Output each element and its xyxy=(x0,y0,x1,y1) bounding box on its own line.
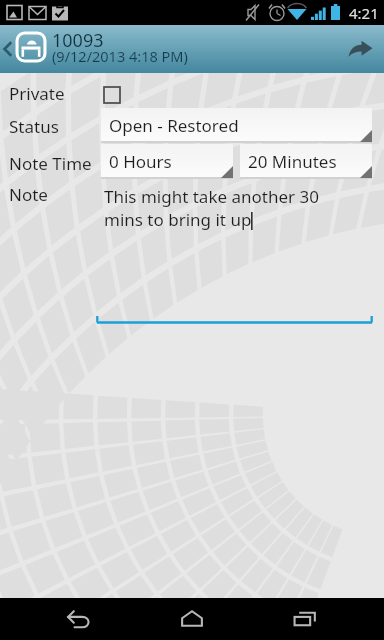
button[interactable]: Back xyxy=(44,598,114,640)
staticText: Status xyxy=(9,115,59,138)
button[interactable]: Share xyxy=(336,25,384,73)
staticText: Open - Restored xyxy=(109,114,239,137)
staticText: Private xyxy=(9,82,65,105)
staticText: This might take another 30 mins to bring… xyxy=(104,185,319,231)
button[interactable]: Open - Restored xyxy=(101,108,372,143)
button[interactable]: Private xyxy=(99,82,125,108)
button[interactable]: 0 Hours xyxy=(101,144,233,179)
staticText: 0 Hours xyxy=(109,150,172,173)
button[interactable]: 20 Minutes xyxy=(240,144,372,179)
staticText: Note Time xyxy=(9,152,92,175)
staticText: Note xyxy=(9,183,48,206)
button[interactable]: Navigate up xyxy=(0,33,47,65)
button[interactable]: Recent apps xyxy=(271,598,341,640)
staticText: (9/12/2013 4:18 PM) xyxy=(52,46,188,66)
button[interactable]: Home xyxy=(157,598,227,640)
staticText: 4:21 xyxy=(349,3,379,23)
staticText: 20 Minutes xyxy=(248,150,337,173)
staticText: 10093 xyxy=(52,28,104,53)
